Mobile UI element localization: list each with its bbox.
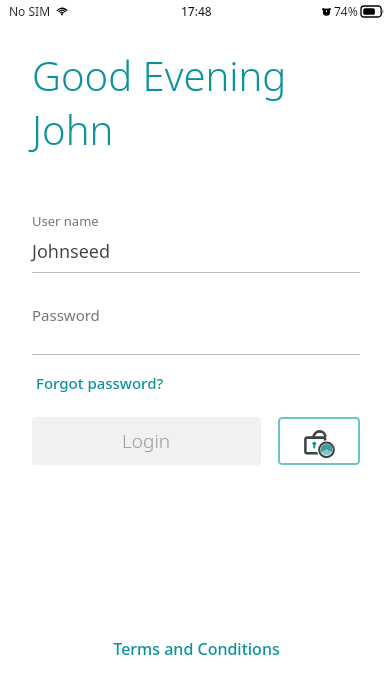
staticText: Terms and Conditions	[113, 638, 280, 660]
button[interactable]: Forgot password?	[32, 369, 168, 397]
staticText: Login	[122, 428, 171, 454]
staticText: No SIM	[9, 3, 51, 19]
staticText: Johnseed	[32, 239, 111, 264]
button[interactable]: Login	[32, 417, 261, 465]
button[interactable]: Terms and Conditions	[0, 628, 392, 670]
staticText: Good Evening	[32, 48, 287, 102]
staticText: John	[32, 102, 114, 156]
staticText: User name	[32, 212, 99, 230]
staticText: 17:48	[181, 3, 212, 19]
staticText: Password	[32, 305, 100, 325]
staticText: 74%	[334, 3, 358, 19]
staticText: Forgot password?	[36, 373, 164, 393]
button[interactable]: Login with fingerprint	[278, 417, 360, 465]
